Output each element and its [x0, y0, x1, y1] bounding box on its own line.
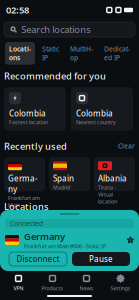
staticText: Spain	[53, 173, 74, 184]
staticText: Albania	[19, 217, 51, 230]
staticText: Settings	[110, 285, 130, 292]
staticText: Albania	[98, 173, 127, 184]
staticText: VPN	[13, 285, 23, 292]
staticText: Connected	[10, 219, 43, 228]
button[interactable]: Disconnect	[9, 252, 67, 266]
staticText: Germany	[24, 230, 65, 243]
button[interactable]: Spain	[49, 157, 90, 191]
staticText: Search locations	[21, 23, 90, 36]
staticText: Madrid	[53, 184, 70, 191]
staticText: Nearest country	[76, 119, 116, 126]
staticText: Tirana - Virtual location	[98, 184, 117, 205]
button[interactable]: Pause	[72, 252, 130, 266]
staticText: Colombia	[9, 108, 46, 119]
staticText: MultiHop	[70, 44, 93, 62]
staticText: Germany	[8, 173, 38, 194]
button[interactable]: MultiHop	[66, 42, 97, 65]
staticText: Frankfurt am Main #006 - Static IP	[8, 194, 40, 223]
button[interactable]: Settings	[103, 275, 137, 291]
button[interactable]: VPN	[1, 275, 35, 291]
button[interactable]: Colombia	[4, 87, 66, 131]
button[interactable]: Dedicated IP	[100, 42, 134, 65]
staticText: Recently used	[4, 140, 67, 152]
staticText: Recommended for you	[4, 70, 106, 82]
staticText: News	[79, 285, 93, 292]
staticText: Colombia	[76, 108, 113, 119]
staticText: Clear	[118, 142, 135, 150]
button[interactable]: News	[69, 275, 103, 291]
staticText: Locations	[4, 200, 49, 213]
staticText: Pause	[89, 254, 113, 264]
staticText: 02:58	[6, 4, 29, 16]
button[interactable]: Products	[35, 275, 69, 291]
button[interactable]: Locations	[5, 42, 35, 65]
button[interactable]: Albania	[0, 218, 139, 230]
button[interactable]: Clear	[118, 142, 135, 150]
button[interactable]: Static IP	[38, 42, 63, 65]
button[interactable]: Colombia	[71, 87, 133, 131]
staticText: Dedicated IP	[104, 44, 130, 62]
button[interactable]: Search locations	[4, 22, 135, 37]
staticText: Locations	[9, 44, 31, 62]
button[interactable]: Germany	[4, 157, 45, 191]
staticText: Disconnect	[16, 254, 59, 264]
staticText: Fastest location	[9, 119, 48, 126]
staticText: Frankfurt am Main #006 - Static IP	[24, 243, 106, 250]
button[interactable]: Albania	[94, 157, 135, 191]
button[interactable]: Germany	[0, 231, 139, 249]
staticText: Static IP	[42, 44, 59, 62]
staticText: Products	[41, 285, 63, 292]
